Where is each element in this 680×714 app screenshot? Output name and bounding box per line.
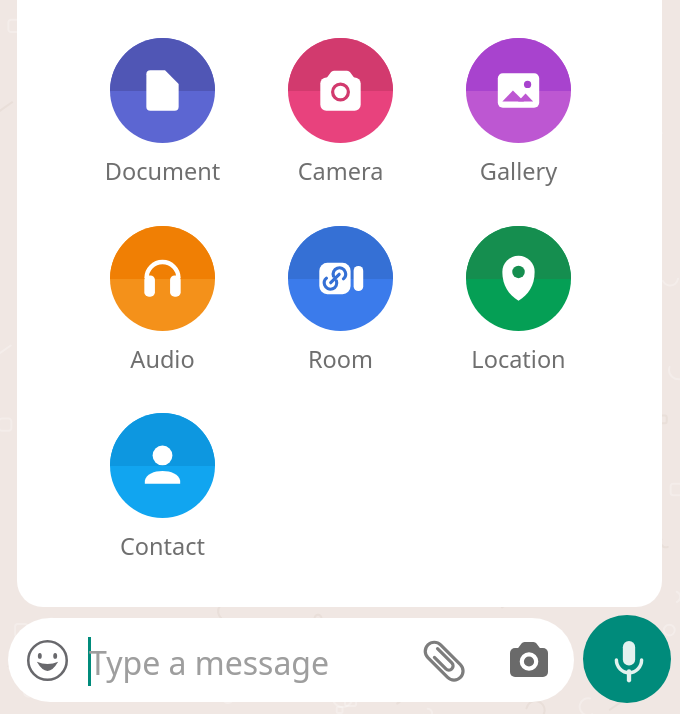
button[interactable]: Emoji: [27, 640, 68, 681]
button[interactable]: Gallery: [442, 38, 595, 180]
staticText: Document: [86, 155, 239, 187]
staticText: Audio: [86, 343, 239, 375]
button[interactable]: Camera: [508, 639, 550, 681]
button[interactable]: Document: [86, 38, 239, 180]
button[interactable]: Attach: [423, 640, 467, 684]
staticText: Contact: [86, 530, 239, 562]
button[interactable]: Audio: [86, 226, 239, 368]
button[interactable]: Location: [442, 226, 595, 368]
staticText: Type a message: [89, 641, 330, 685]
button[interactable]: [8, 618, 574, 702]
staticText: Gallery: [442, 155, 595, 187]
button[interactable]: Contact: [86, 413, 239, 555]
button[interactable]: Camera: [264, 38, 417, 180]
staticText: Location: [442, 343, 595, 375]
button[interactable]: Room: [264, 226, 417, 368]
staticText: Room: [264, 343, 417, 375]
button[interactable]: Record voice message: [583, 615, 671, 703]
staticText: Camera: [264, 155, 417, 187]
